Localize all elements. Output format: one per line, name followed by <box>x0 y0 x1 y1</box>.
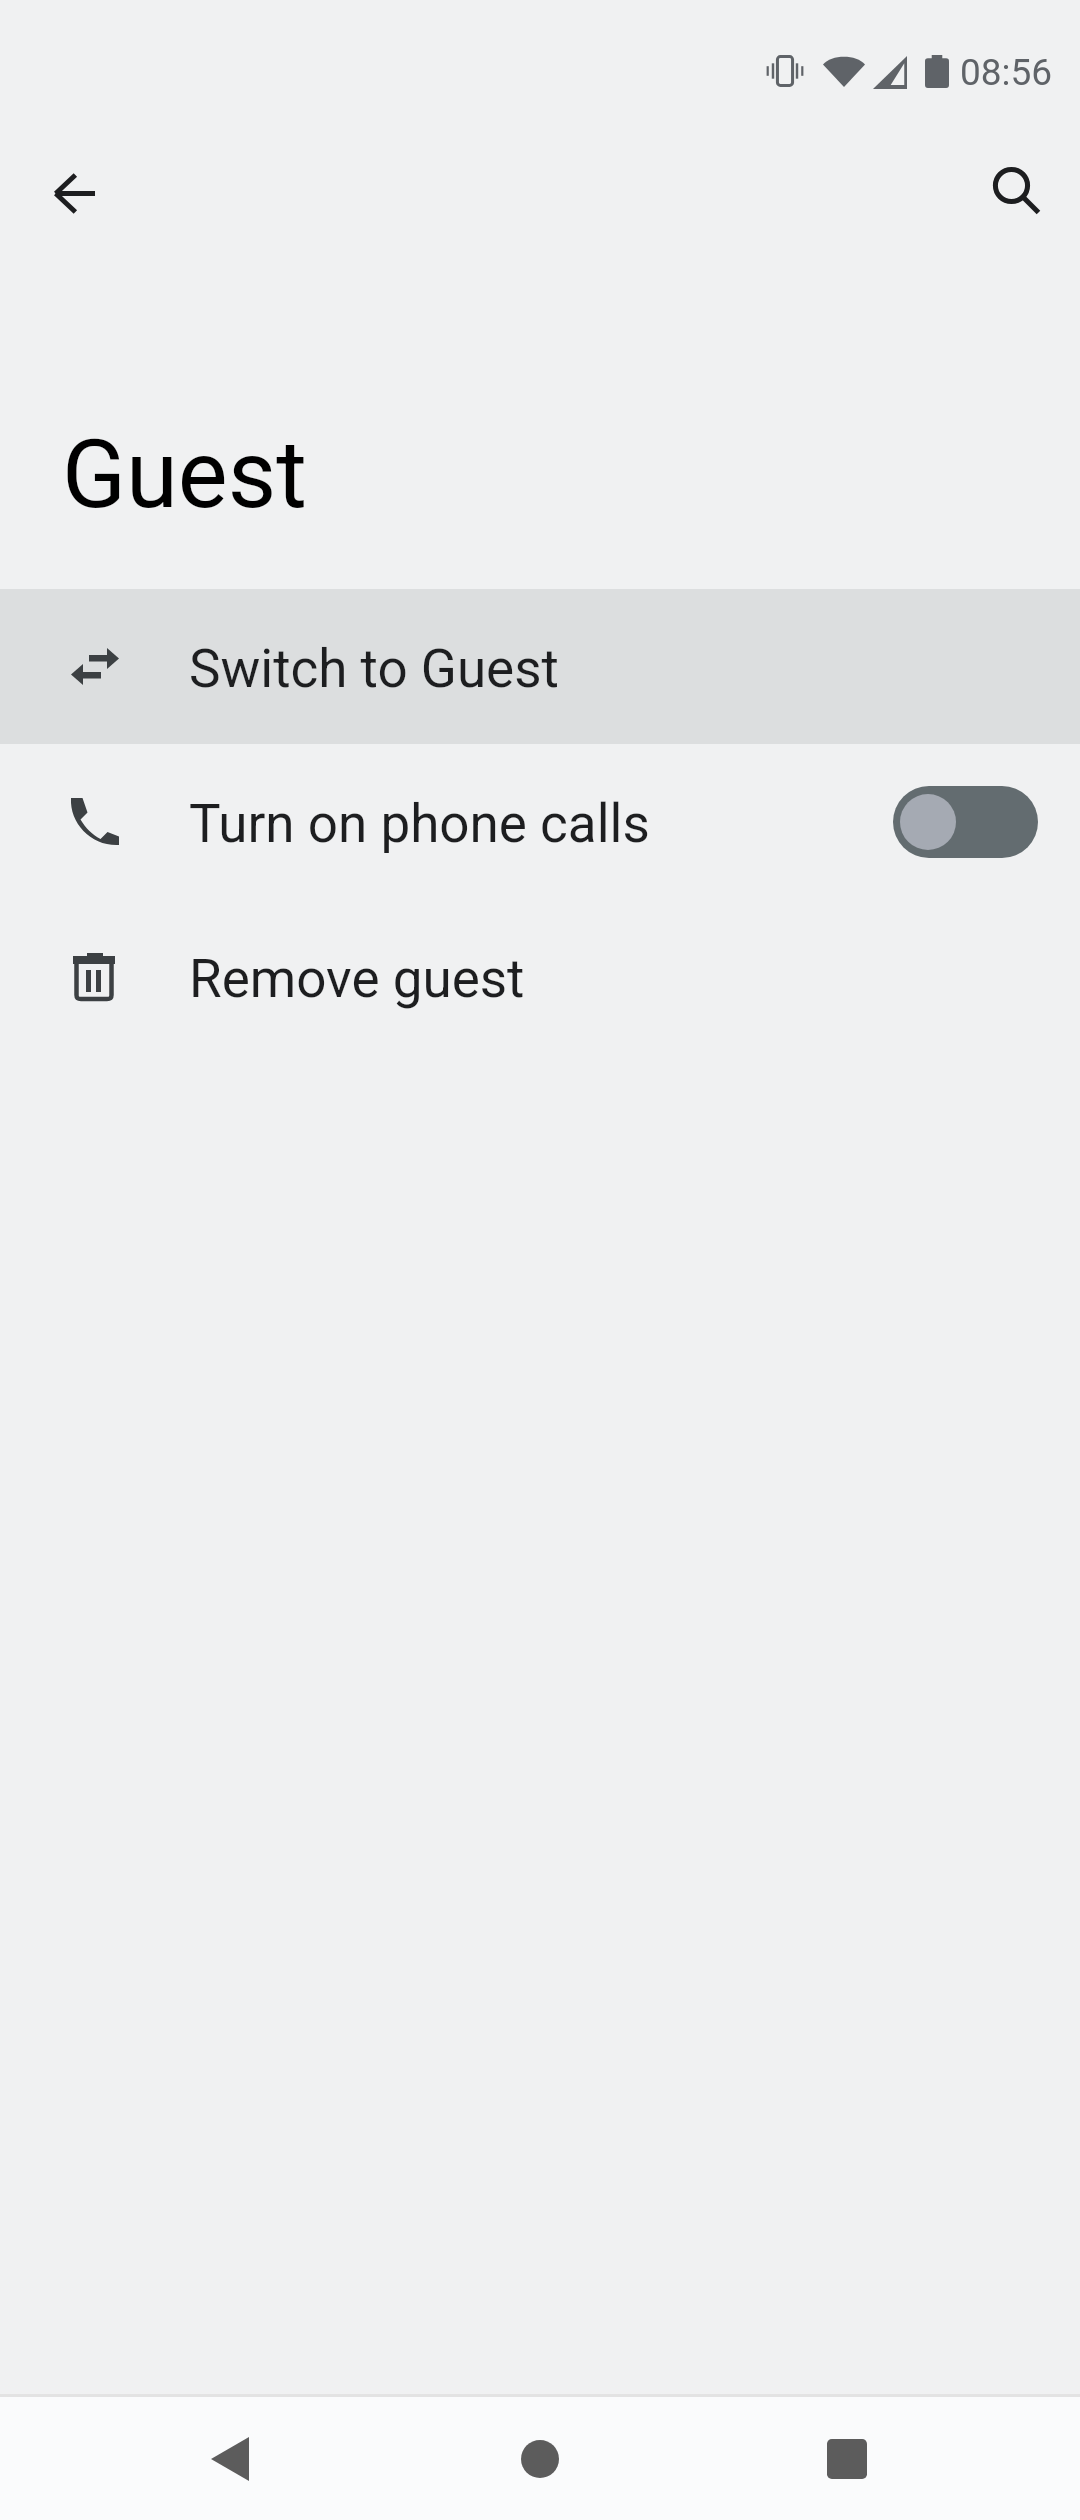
button[interactable]: Back <box>150 2397 310 2520</box>
button[interactable]: Search <box>962 136 1072 246</box>
button[interactable]: Turn on phone calls <box>0 744 1080 899</box>
staticText: 08:56 <box>960 51 1053 94</box>
button[interactable]: Home <box>460 2397 620 2520</box>
button[interactable]: Switch to Guest <box>0 589 1080 744</box>
staticText: Remove guest <box>189 948 525 1010</box>
button[interactable]: Recents <box>767 2397 927 2520</box>
button[interactable]: Remove guest <box>0 899 1080 1054</box>
staticText: Turn on phone calls <box>189 793 650 855</box>
staticText: Switch to Guest <box>189 638 559 700</box>
staticText: Guest <box>62 420 307 530</box>
button[interactable]: Phone calls toggle <box>893 786 1038 858</box>
button[interactable]: Back <box>19 138 129 248</box>
